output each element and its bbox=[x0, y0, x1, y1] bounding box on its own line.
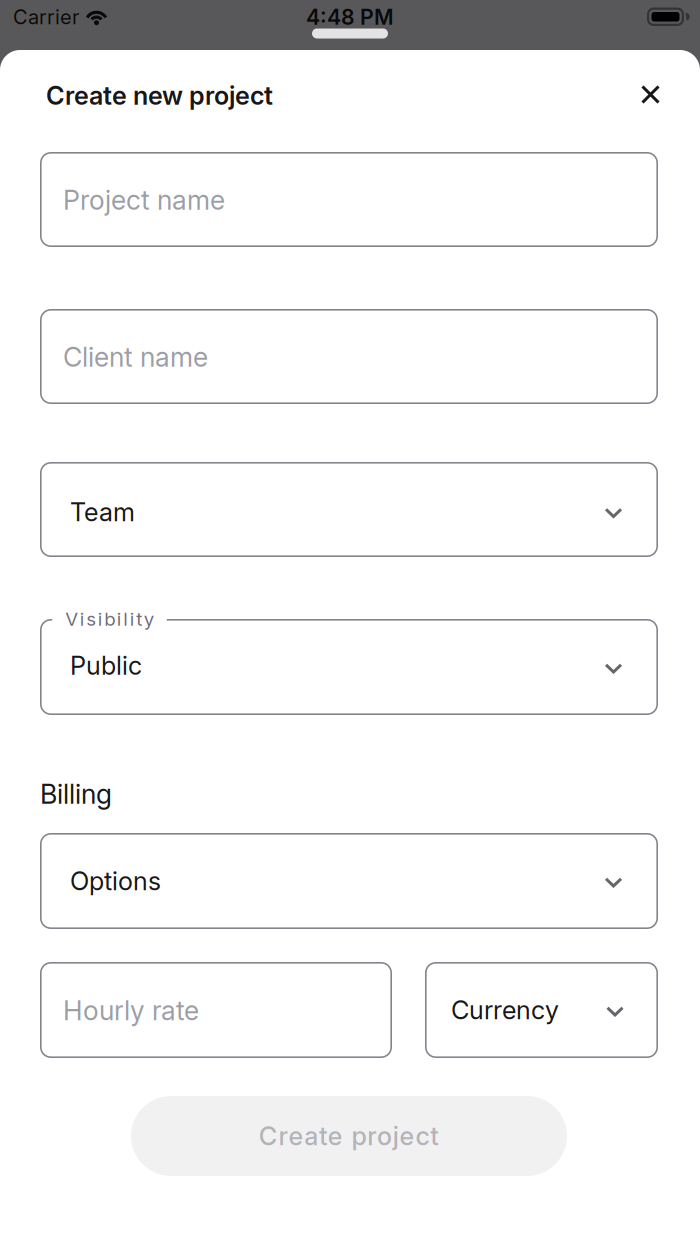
button[interactable]: Currency bbox=[425, 962, 658, 1058]
staticText: Visibility bbox=[65, 608, 154, 630]
staticText: Hourly rate bbox=[63, 995, 199, 1026]
staticText: Client name bbox=[63, 341, 208, 373]
staticText: Create project bbox=[259, 1121, 439, 1151]
button[interactable]: Close bbox=[627, 71, 673, 117]
staticText: Currency bbox=[451, 995, 559, 1025]
staticText: Team bbox=[70, 497, 135, 527]
staticText: 4:48 PM bbox=[306, 4, 394, 30]
button[interactable]: Create project bbox=[131, 1096, 567, 1176]
staticText: Options bbox=[70, 866, 161, 896]
staticText: Public bbox=[70, 651, 142, 680]
staticText: Carrier bbox=[13, 5, 79, 29]
staticText: Billing bbox=[40, 778, 112, 810]
button[interactable]: Public bbox=[40, 619, 658, 715]
button[interactable]: Options bbox=[40, 833, 658, 929]
staticText: Project name bbox=[63, 184, 225, 216]
staticText: Create new project bbox=[46, 81, 273, 110]
button[interactable]: Team bbox=[40, 462, 658, 557]
